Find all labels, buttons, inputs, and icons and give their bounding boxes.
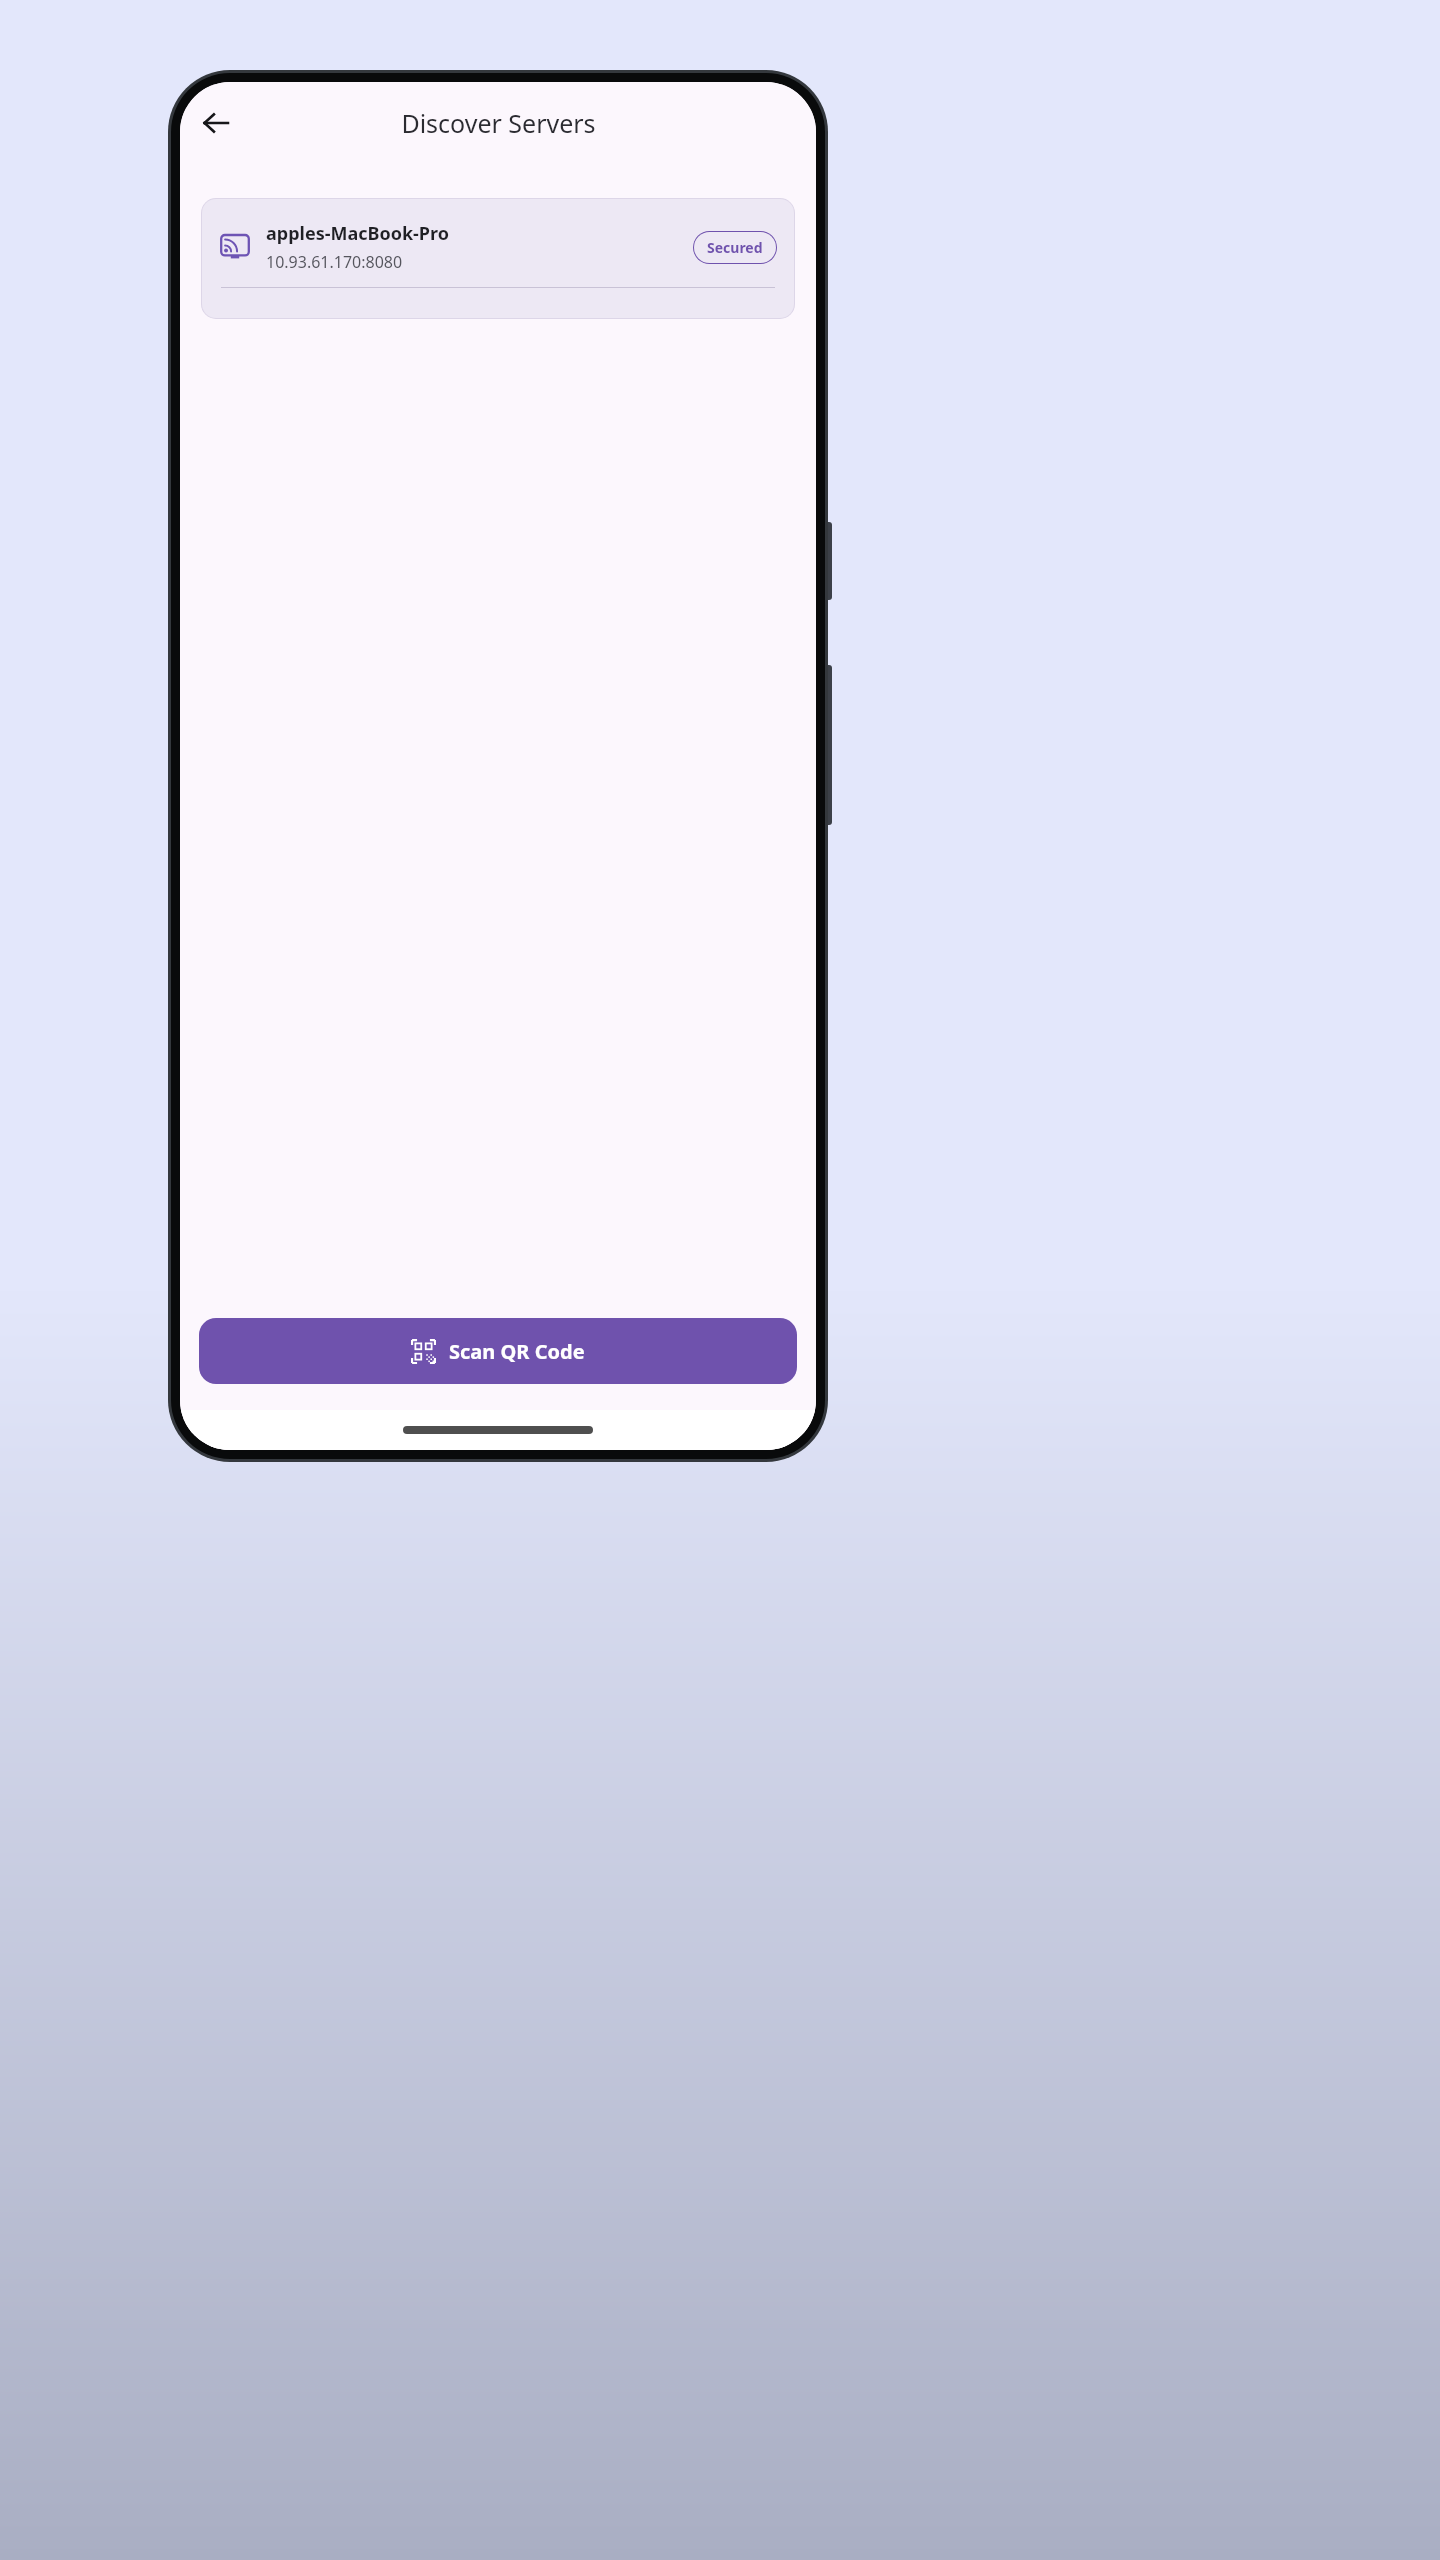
staticText: 10.93.61.170:8080 <box>266 251 403 273</box>
button[interactable]: Back <box>190 97 242 149</box>
staticText: Scan QR Code <box>449 1338 585 1365</box>
button[interactable]: apples-MacBook-Pro <box>202 199 794 318</box>
staticText: Discover Servers <box>401 106 596 140</box>
staticText: apples-MacBook-Pro <box>266 221 449 246</box>
staticText: Secured <box>707 238 763 257</box>
button[interactable]: Scan QR Code <box>199 1318 797 1384</box>
button[interactable]: Secured <box>692 230 778 265</box>
